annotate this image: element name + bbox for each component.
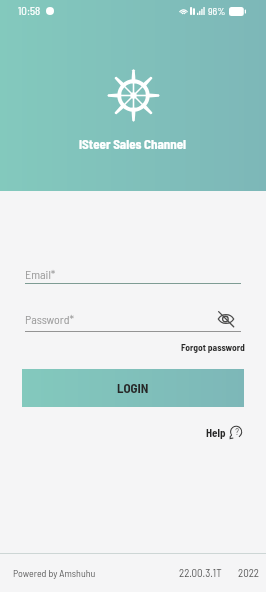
staticText: 22.00.3.1T	[179, 566, 222, 579]
staticText: 10:58	[18, 4, 41, 17]
button[interactable]: Show password	[214, 307, 238, 331]
staticText: LOGIN	[117, 380, 149, 396]
staticText: Forgot password	[181, 341, 245, 352]
button[interactable]: LOGIN	[22, 369, 244, 407]
staticText: Password*	[25, 312, 75, 326]
button[interactable]: Password*	[25, 312, 241, 326]
staticText: 96%	[208, 5, 226, 17]
staticText: ?	[235, 426, 239, 437]
staticText: Help	[206, 426, 226, 439]
staticText: iSteer Sales Channel	[79, 136, 187, 152]
button[interactable]: Email*	[25, 267, 241, 281]
staticText: 2022	[238, 566, 260, 579]
button[interactable]: Forgot password	[179, 339, 247, 354]
staticText: Powered by Amshuhu	[13, 567, 96, 579]
staticText: Email*	[25, 267, 56, 281]
button[interactable]: Help	[204, 424, 244, 441]
